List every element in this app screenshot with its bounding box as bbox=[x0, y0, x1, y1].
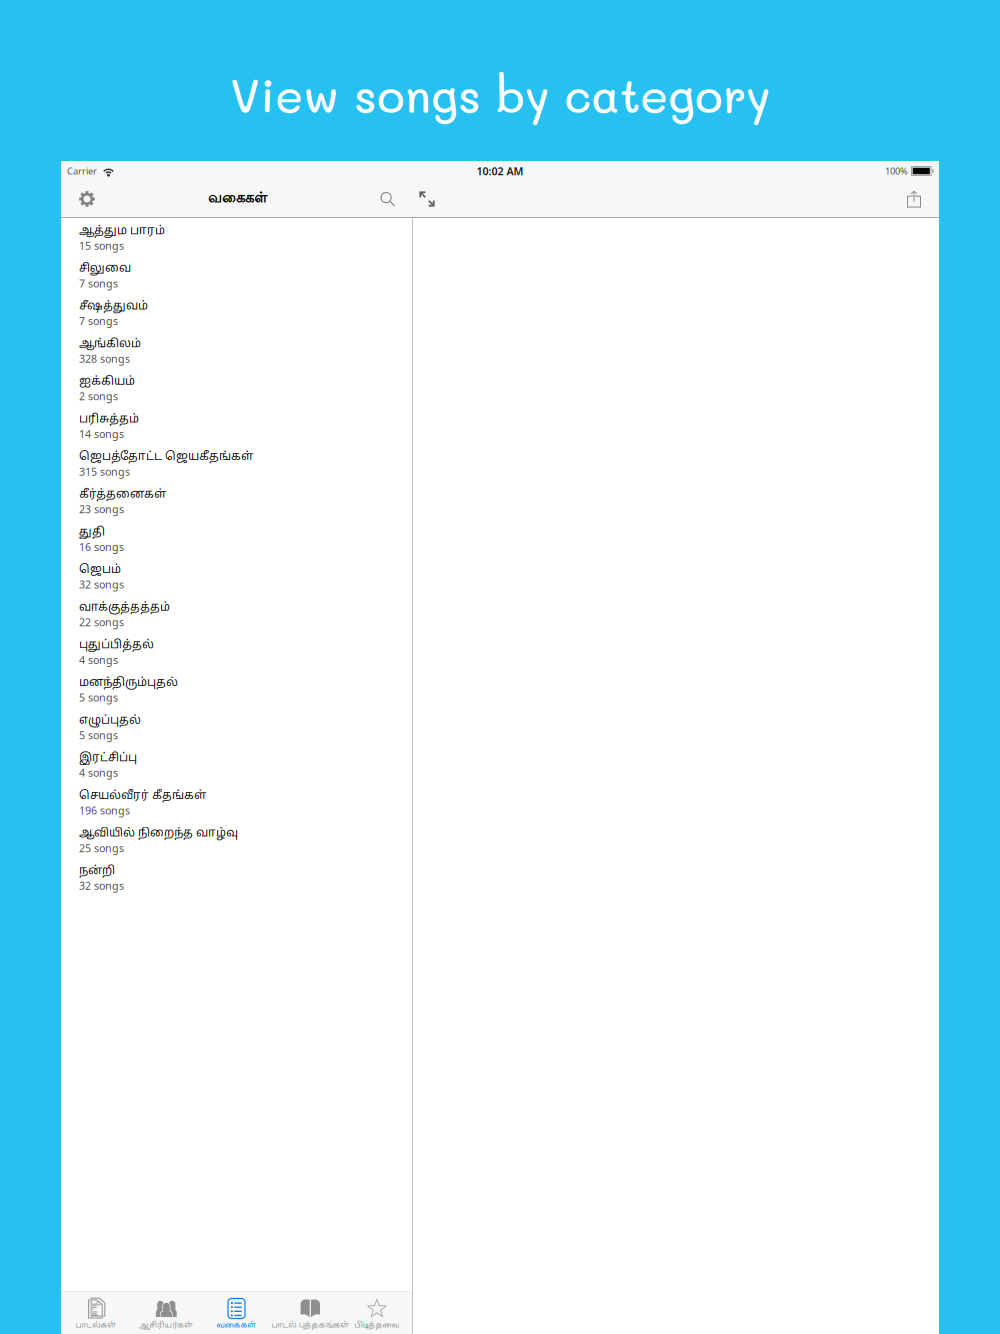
button[interactable]: ஜெபம் bbox=[61, 557, 412, 594]
staticText: 16 songs bbox=[79, 540, 124, 554]
staticText: சிலுவை bbox=[79, 262, 131, 276]
button[interactable]: சீஷத்துவம் bbox=[61, 293, 412, 331]
staticText: 14 songs bbox=[79, 427, 124, 441]
staticText: ஆத்தும பாரம் bbox=[79, 224, 165, 238]
staticText: ஜெபம் bbox=[79, 563, 121, 577]
staticText: ஆசிரியர்கள் bbox=[139, 1320, 193, 1330]
staticText: 2 songs bbox=[79, 389, 118, 403]
staticText: பிடித்தவை bbox=[354, 1320, 399, 1330]
staticText: 15 songs bbox=[79, 238, 124, 253]
staticText: வகைகள் bbox=[208, 190, 267, 208]
staticText: இரட்சிப்பு bbox=[79, 751, 137, 766]
button[interactable]: ஆத்தும பாரம் bbox=[61, 218, 412, 256]
button[interactable]: பரிசுத்தம் bbox=[61, 406, 412, 444]
button[interactable]: சிலுவை bbox=[61, 256, 412, 293]
staticText: எழுப்புதல் bbox=[79, 713, 141, 728]
staticText: 196 songs bbox=[79, 803, 130, 817]
staticText: புதுப்பித்தல் bbox=[79, 638, 154, 653]
button[interactable]: ஆசிரியர்கள் bbox=[131, 1291, 201, 1334]
button[interactable]: பிடித்தவை bbox=[342, 1291, 412, 1334]
staticText: வாக்குத்தத்தம் bbox=[79, 600, 170, 615]
staticText: ஜெபத்தோட்ட ஜெயகீதங்கள் bbox=[79, 450, 254, 464]
staticText: சீஷத்துவம் bbox=[79, 299, 148, 314]
staticText: பாடல் புத்தகங்கள் bbox=[272, 1320, 350, 1330]
staticText: 7 songs bbox=[79, 276, 118, 290]
staticText: 32 songs bbox=[79, 879, 124, 893]
staticText: 4 songs bbox=[79, 766, 118, 780]
staticText: View songs by category bbox=[230, 65, 770, 125]
staticText: வகைகள் bbox=[216, 1320, 256, 1330]
staticText: செயல்வீரர் கீதங்கள் bbox=[79, 789, 207, 803]
button[interactable]: செயல்வீரர் கீதங்கள் bbox=[61, 783, 412, 820]
staticText: பாடல்கள் bbox=[76, 1320, 117, 1330]
staticText: ஆங்கிலம் bbox=[79, 337, 141, 351]
button[interactable]: பாடல்கள் bbox=[61, 1291, 131, 1334]
button[interactable]: Settings bbox=[67, 181, 107, 217]
staticText: 25 songs bbox=[79, 841, 124, 855]
button[interactable]: நன்றி bbox=[61, 858, 412, 896]
button[interactable]: பாடல் புத்தகங்கள் bbox=[272, 1291, 342, 1334]
button[interactable]: ஆவியில் நிறைந்த வாழ்வு bbox=[61, 820, 412, 858]
button[interactable]: வாக்குத்தத்தம் bbox=[61, 594, 412, 632]
button[interactable]: Search bbox=[368, 181, 418, 217]
staticText: 315 songs bbox=[79, 464, 130, 479]
button[interactable]: வகைகள் bbox=[201, 1291, 272, 1334]
button[interactable]: ஜெபத்தோட்ட ஜெயகீதங்கள் bbox=[61, 444, 412, 481]
staticText: ஐக்கியம் bbox=[79, 375, 135, 389]
staticText: 23 songs bbox=[79, 502, 124, 516]
button[interactable]: துதி bbox=[61, 519, 412, 557]
staticText: துதி bbox=[79, 525, 105, 540]
staticText: ஆவியில் நிறைந்த வாழ்வு bbox=[79, 826, 238, 841]
staticText: 10:02 AM bbox=[476, 164, 523, 178]
button[interactable]: ஐக்கியம் bbox=[61, 369, 412, 406]
staticText: 5 songs bbox=[79, 728, 118, 742]
button[interactable]: எழுப்புதல் bbox=[61, 707, 412, 745]
staticText: 32 songs bbox=[79, 577, 124, 592]
button[interactable]: Share bbox=[895, 181, 933, 217]
button[interactable]: புதுப்பித்தல் bbox=[61, 632, 412, 670]
staticText: கீர்த்தனைகள் bbox=[79, 488, 167, 502]
button[interactable]: Expand bbox=[418, 181, 458, 217]
button[interactable]: ஆங்கிலம் bbox=[61, 331, 412, 368]
button[interactable]: கீர்த்தனைகள் bbox=[61, 482, 412, 519]
staticText: Carrier bbox=[67, 165, 97, 177]
staticText: 328 songs bbox=[79, 351, 130, 366]
button[interactable]: இரட்சிப்பு bbox=[61, 745, 412, 783]
staticText: நன்றி bbox=[79, 864, 115, 878]
staticText: 7 songs bbox=[79, 314, 118, 328]
staticText: 22 songs bbox=[79, 615, 124, 629]
staticText: 100% bbox=[885, 165, 908, 177]
staticText: பரிசுத்தம் bbox=[79, 412, 139, 427]
staticText: மனந்திரும்புதல் bbox=[79, 676, 178, 690]
staticText: 4 songs bbox=[79, 653, 118, 667]
staticText: 5 songs bbox=[79, 690, 118, 704]
button[interactable]: மனந்திரும்புதல் bbox=[61, 670, 412, 707]
